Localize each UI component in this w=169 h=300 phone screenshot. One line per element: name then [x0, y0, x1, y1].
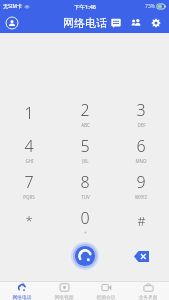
button[interactable]: Backspace — [131, 246, 151, 266]
button[interactable]: 2 — [57, 95, 113, 131]
button[interactable]: 网络电话 — [0, 282, 43, 300]
staticText: 业务界面 — [138, 294, 158, 300]
staticText: 网络电话 — [63, 16, 107, 30]
staticText: 5 — [80, 135, 90, 157]
staticText: 下午1:46 — [74, 3, 96, 11]
staticText: 网络视频 — [54, 294, 74, 300]
staticText: GHI — [25, 158, 34, 164]
button[interactable]: 7 — [0, 167, 57, 203]
staticText: ABC — [81, 122, 90, 128]
button[interactable]: Profile — [5, 16, 19, 30]
button[interactable]: 视频会议 — [85, 282, 127, 300]
button[interactable]: 3 — [113, 95, 169, 131]
staticText: + — [84, 230, 87, 236]
staticText: MNO — [135, 158, 147, 164]
staticText: 8 — [80, 171, 90, 193]
button[interactable]: 5 — [57, 131, 113, 167]
staticText: # — [137, 212, 146, 230]
staticText: * — [25, 212, 33, 230]
button[interactable]: Contacts — [128, 15, 144, 31]
staticText: 6 — [136, 135, 146, 157]
button[interactable]: Call — [71, 242, 99, 270]
staticText: 无SIM卡 — [3, 3, 22, 10]
button[interactable]: 网络视频 — [43, 282, 85, 300]
button[interactable]: 9 — [113, 167, 169, 203]
staticText: 0 — [80, 207, 90, 229]
staticText: WXYZ — [135, 194, 147, 200]
staticText: TUV — [81, 194, 90, 200]
button[interactable]: Settings — [148, 15, 164, 31]
staticText: 4 — [24, 135, 34, 157]
button[interactable]: 4 — [0, 131, 57, 167]
button[interactable]: 8 — [57, 167, 113, 203]
staticText: 9 — [136, 171, 146, 193]
staticText: PQRS — [23, 194, 35, 200]
staticText: 网络电话 — [12, 294, 32, 300]
staticText: 73% — [145, 3, 155, 10]
staticText: 3 — [136, 99, 146, 121]
staticText: 视频会议 — [96, 294, 116, 300]
staticText: JKL — [82, 158, 89, 164]
button[interactable]: 6 — [113, 131, 169, 167]
staticText: 1 — [24, 102, 34, 124]
staticText: DEF — [137, 122, 146, 128]
button[interactable]: # — [113, 203, 169, 239]
button[interactable]: 1 — [0, 95, 57, 131]
button[interactable]: Messages — [108, 15, 124, 31]
staticText: 2 — [80, 99, 90, 121]
staticText: 7 — [24, 171, 34, 193]
button[interactable]: * — [0, 203, 57, 239]
button[interactable]: 0 — [57, 203, 113, 239]
button[interactable]: 业务界面 — [127, 282, 169, 300]
